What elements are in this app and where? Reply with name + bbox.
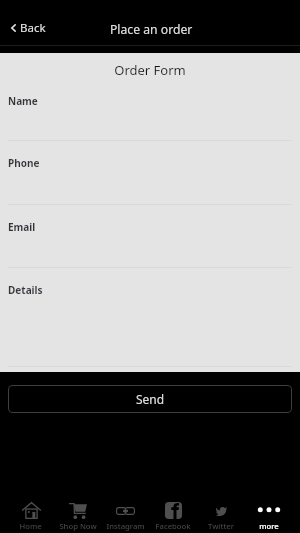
staticText: Shop Now [59,521,97,531]
staticText: Instagram [106,521,145,531]
button[interactable]: Twitter [197,480,245,533]
button[interactable]: Shop Now [54,480,101,533]
staticText: Twitter [208,521,234,531]
staticText: Order Form [0,61,300,79]
button[interactable]: Send [8,385,292,413]
staticText: Home [19,521,42,531]
button[interactable]: Home [7,480,54,533]
button[interactable]: Name [0,79,300,141]
staticText: Phone [8,156,40,170]
staticText: Name [8,94,38,108]
button[interactable]: Facebook [149,480,197,533]
button[interactable]: Details [0,268,300,367]
button[interactable]: Phone [0,141,300,205]
button[interactable]: more [245,480,293,533]
button[interactable]: Email [0,205,300,268]
staticText: more [259,521,279,531]
staticText: Send [136,391,165,407]
staticText: Details [8,283,43,297]
staticText: Place an order [110,21,193,38]
staticText: Facebook [155,521,191,531]
staticText: Email [8,220,36,234]
button[interactable]: Instagram [101,480,149,533]
staticText: Back [20,20,46,36]
button[interactable]: Back [9,18,48,38]
